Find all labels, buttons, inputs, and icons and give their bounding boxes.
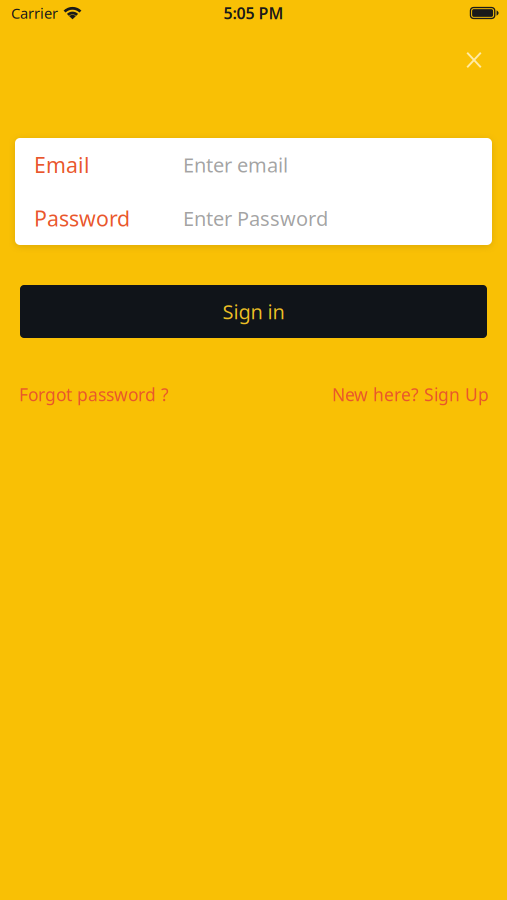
- staticText: Password: [34, 204, 130, 232]
- staticText: New here? Sign Up: [332, 383, 489, 406]
- button[interactable]: New here? Sign Up: [332, 383, 489, 406]
- staticText: Enter email: [183, 151, 288, 178]
- button[interactable]: Close: [452, 38, 496, 82]
- staticText: Sign in: [222, 298, 284, 325]
- staticText: Enter Password: [183, 205, 328, 232]
- staticText: Carrier: [11, 3, 58, 23]
- staticText: Forgot password ?: [19, 383, 169, 406]
- button[interactable]: Password: [15, 191, 492, 245]
- button[interactable]: Email: [15, 138, 492, 191]
- staticText: 5:05 PM: [223, 2, 283, 24]
- staticText: Email: [34, 151, 90, 179]
- button[interactable]: Forgot password ?: [19, 383, 169, 406]
- button[interactable]: Sign in: [20, 285, 487, 338]
